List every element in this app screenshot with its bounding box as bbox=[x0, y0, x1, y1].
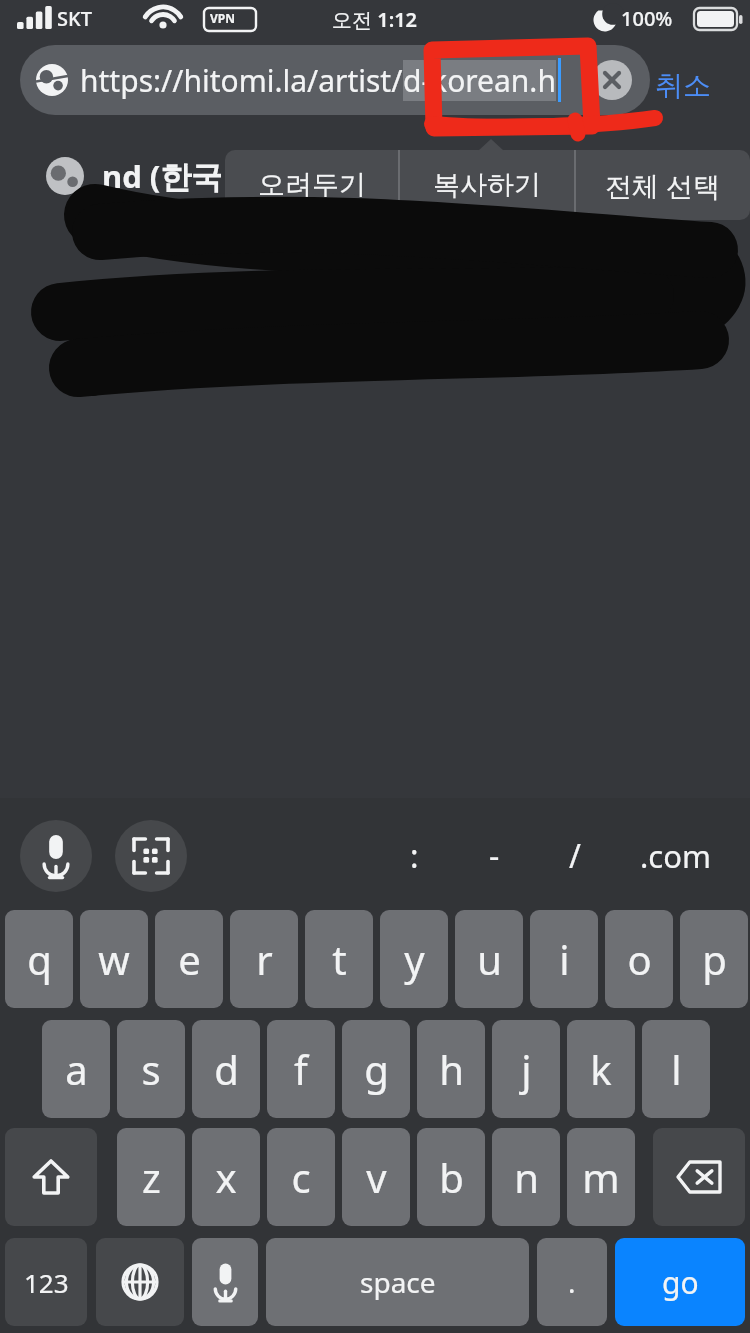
staticText: s bbox=[141, 1042, 161, 1096]
staticText: d-korean.h bbox=[403, 60, 556, 101]
staticText: g bbox=[364, 1042, 389, 1096]
button[interactable]: u bbox=[455, 910, 523, 1008]
button[interactable]: g bbox=[342, 1020, 410, 1118]
button[interactable]: Scan code bbox=[115, 820, 187, 892]
button[interactable]: y bbox=[380, 910, 448, 1008]
staticText: o bbox=[627, 932, 652, 986]
button[interactable]: r bbox=[230, 910, 298, 1008]
button[interactable]: . bbox=[537, 1238, 607, 1326]
button[interactable]: h bbox=[417, 1020, 485, 1118]
staticText: a bbox=[65, 1042, 88, 1096]
button[interactable]: : bbox=[384, 820, 444, 892]
button[interactable]: i bbox=[530, 910, 598, 1008]
staticText: - bbox=[489, 834, 500, 878]
button[interactable]: l bbox=[642, 1020, 710, 1118]
staticText: u bbox=[477, 932, 502, 986]
button[interactable]: a bbox=[42, 1020, 110, 1118]
staticText: l bbox=[671, 1042, 682, 1096]
button[interactable]: 전체 선택 bbox=[576, 150, 750, 220]
button[interactable]: b bbox=[417, 1128, 485, 1226]
staticText: 복사하기 bbox=[433, 168, 541, 202]
staticText: v bbox=[366, 1150, 387, 1204]
button[interactable]: c bbox=[267, 1128, 335, 1226]
button[interactable]: / bbox=[545, 820, 605, 892]
button[interactable]: 123 bbox=[5, 1238, 87, 1326]
staticText: n bbox=[514, 1150, 539, 1204]
staticText: : bbox=[410, 834, 419, 878]
button[interactable]: https://hitomi.la/artist/ bbox=[20, 45, 650, 115]
staticText: nd (한국 bbox=[102, 155, 223, 197]
button[interactable]: 오려두기 bbox=[225, 150, 398, 220]
button[interactable]: m bbox=[567, 1128, 635, 1226]
staticText: w bbox=[98, 932, 130, 986]
button[interactable]: Backspace bbox=[653, 1128, 745, 1226]
staticText: c bbox=[291, 1150, 311, 1204]
button[interactable]: s bbox=[117, 1020, 185, 1118]
button[interactable]: .com bbox=[620, 820, 730, 892]
button[interactable]: j bbox=[492, 1020, 560, 1118]
button[interactable]: Shift bbox=[5, 1128, 97, 1226]
button[interactable]: Change keyboard language bbox=[96, 1238, 184, 1326]
button[interactable]: w bbox=[80, 910, 148, 1008]
staticText: j bbox=[521, 1042, 532, 1096]
staticText: 오려두기 bbox=[258, 168, 366, 202]
staticText: . bbox=[568, 1263, 576, 1301]
button[interactable]: 복사하기 bbox=[400, 150, 574, 220]
button[interactable]: Clear text bbox=[592, 60, 632, 100]
button[interactable]: 취소 bbox=[655, 45, 711, 125]
button[interactable]: t bbox=[305, 910, 373, 1008]
staticText: k bbox=[590, 1042, 612, 1096]
staticText: q bbox=[27, 932, 52, 986]
button[interactable]: k bbox=[567, 1020, 635, 1118]
button[interactable]: o bbox=[605, 910, 673, 1008]
button[interactable]: Dictate bbox=[192, 1238, 258, 1326]
button[interactable]: - bbox=[464, 820, 524, 892]
button[interactable]: Voice input bbox=[20, 820, 92, 892]
staticText: m bbox=[582, 1150, 620, 1204]
staticText: z bbox=[142, 1150, 161, 1204]
staticText: b bbox=[439, 1150, 464, 1204]
button[interactable]: q bbox=[5, 910, 73, 1008]
staticText: go bbox=[662, 1262, 699, 1303]
staticText: 100% bbox=[621, 5, 673, 32]
staticText: e bbox=[178, 932, 201, 986]
staticText: https://hitomi.la/artist/ bbox=[80, 60, 403, 101]
button[interactable]: v bbox=[342, 1128, 410, 1226]
staticText: space bbox=[360, 1263, 436, 1301]
staticText: f bbox=[294, 1042, 308, 1096]
staticText: 취소 bbox=[655, 68, 711, 103]
staticText: x bbox=[215, 1150, 237, 1204]
staticText: .com bbox=[640, 835, 711, 877]
button[interactable]: go bbox=[615, 1238, 745, 1326]
staticText: d bbox=[214, 1042, 239, 1096]
staticText: 전체 선택 bbox=[605, 167, 721, 204]
button[interactable]: n bbox=[492, 1128, 560, 1226]
staticText: r bbox=[256, 932, 273, 986]
staticText: 123 bbox=[24, 1265, 69, 1300]
staticText: p bbox=[702, 932, 727, 986]
staticText: SKT bbox=[57, 5, 92, 32]
staticText: VPN bbox=[210, 10, 236, 26]
button[interactable]: e bbox=[155, 910, 223, 1008]
button[interactable]: x bbox=[192, 1128, 260, 1226]
staticText: t bbox=[332, 932, 347, 986]
staticText: 오전 1:12 bbox=[332, 6, 418, 33]
button[interactable]: z bbox=[117, 1128, 185, 1226]
staticText: y bbox=[404, 932, 425, 986]
button[interactable]: space bbox=[266, 1238, 529, 1326]
button[interactable]: d bbox=[192, 1020, 260, 1118]
staticText: / bbox=[569, 834, 581, 878]
button[interactable]: p bbox=[680, 910, 748, 1008]
staticText: i bbox=[559, 932, 570, 986]
button[interactable]: f bbox=[267, 1020, 335, 1118]
staticText: h bbox=[439, 1042, 464, 1096]
